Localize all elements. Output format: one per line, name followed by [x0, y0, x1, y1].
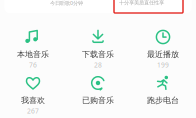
- staticText: 267: [27, 106, 39, 115]
- staticText: 我喜欢: [21, 95, 45, 105]
- staticText: 今日听歌0分钟: [50, 0, 83, 7]
- button[interactable]: 已购音乐: [67, 75, 129, 115]
- button[interactable]: 最近播放: [132, 29, 194, 69]
- staticText: 最近播放: [147, 49, 179, 59]
- button[interactable]: 本地音乐: [2, 29, 64, 69]
- staticText: 下载音乐: [82, 49, 114, 59]
- staticText: 本地音乐: [17, 49, 49, 59]
- button[interactable]: 下载音乐: [67, 29, 129, 69]
- staticText: 76: [29, 60, 37, 69]
- button[interactable]: 跑步电台: [132, 75, 194, 115]
- staticText: 已购音乐: [82, 95, 114, 105]
- staticText: 十分享美质直任性享: [119, 0, 164, 6]
- staticText: 跑步电台: [147, 95, 179, 105]
- staticText: 28: [94, 60, 102, 69]
- button[interactable]: 我喜欢: [2, 75, 64, 115]
- staticText: 199: [157, 60, 169, 69]
